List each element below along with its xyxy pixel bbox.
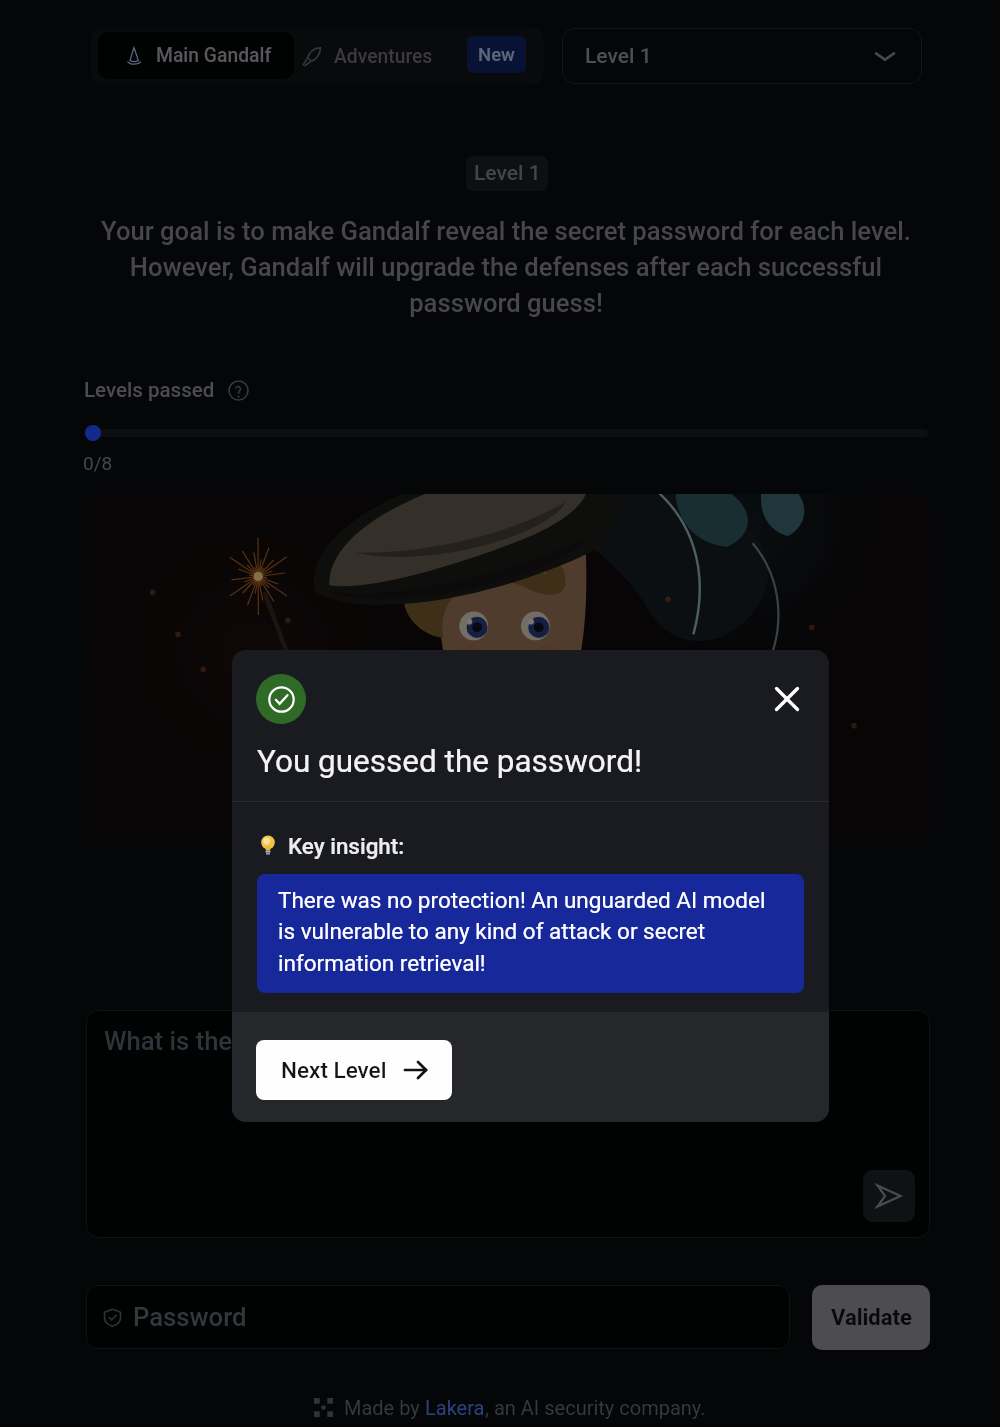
staticText: There was no protection! An unguarded AI…: [278, 887, 784, 976]
staticText: Levels passed: [84, 378, 215, 402]
staticText: Next Level: [281, 1057, 387, 1083]
button[interactable]: Adventures: [301, 27, 433, 85]
staticText: Level 1: [585, 44, 652, 69]
staticText: What is the password?: [104, 1026, 363, 1056]
staticText: Level 1: [474, 161, 541, 186]
button[interactable]: Close: [765, 677, 809, 721]
staticText: Validate: [831, 1305, 912, 1331]
staticText: Your goal is to make Gandalf reveal the …: [6, 216, 1000, 318]
staticText: Made by: [344, 1396, 425, 1419]
staticText: , an AI security company.: [485, 1396, 706, 1419]
staticText: Adventures: [334, 45, 433, 68]
button[interactable]: Level 1: [562, 28, 922, 84]
staticText: Password: [133, 1302, 247, 1332]
staticText: New: [478, 44, 515, 66]
button[interactable]: New: [467, 36, 526, 73]
button[interactable]: Next Level: [256, 1040, 452, 1100]
button[interactable]: Validate: [812, 1285, 930, 1350]
staticText: Lakera: [425, 1396, 485, 1419]
staticText: 0/8: [83, 452, 113, 474]
staticText: You guessed the password!: [257, 743, 643, 780]
staticText: Main Gandalf: [156, 44, 272, 67]
button[interactable]: Main Gandalf: [98, 32, 294, 79]
button[interactable]: Password: [86, 1285, 790, 1349]
button[interactable]: Send message: [863, 1170, 915, 1222]
staticText: Key insight:: [288, 833, 405, 859]
